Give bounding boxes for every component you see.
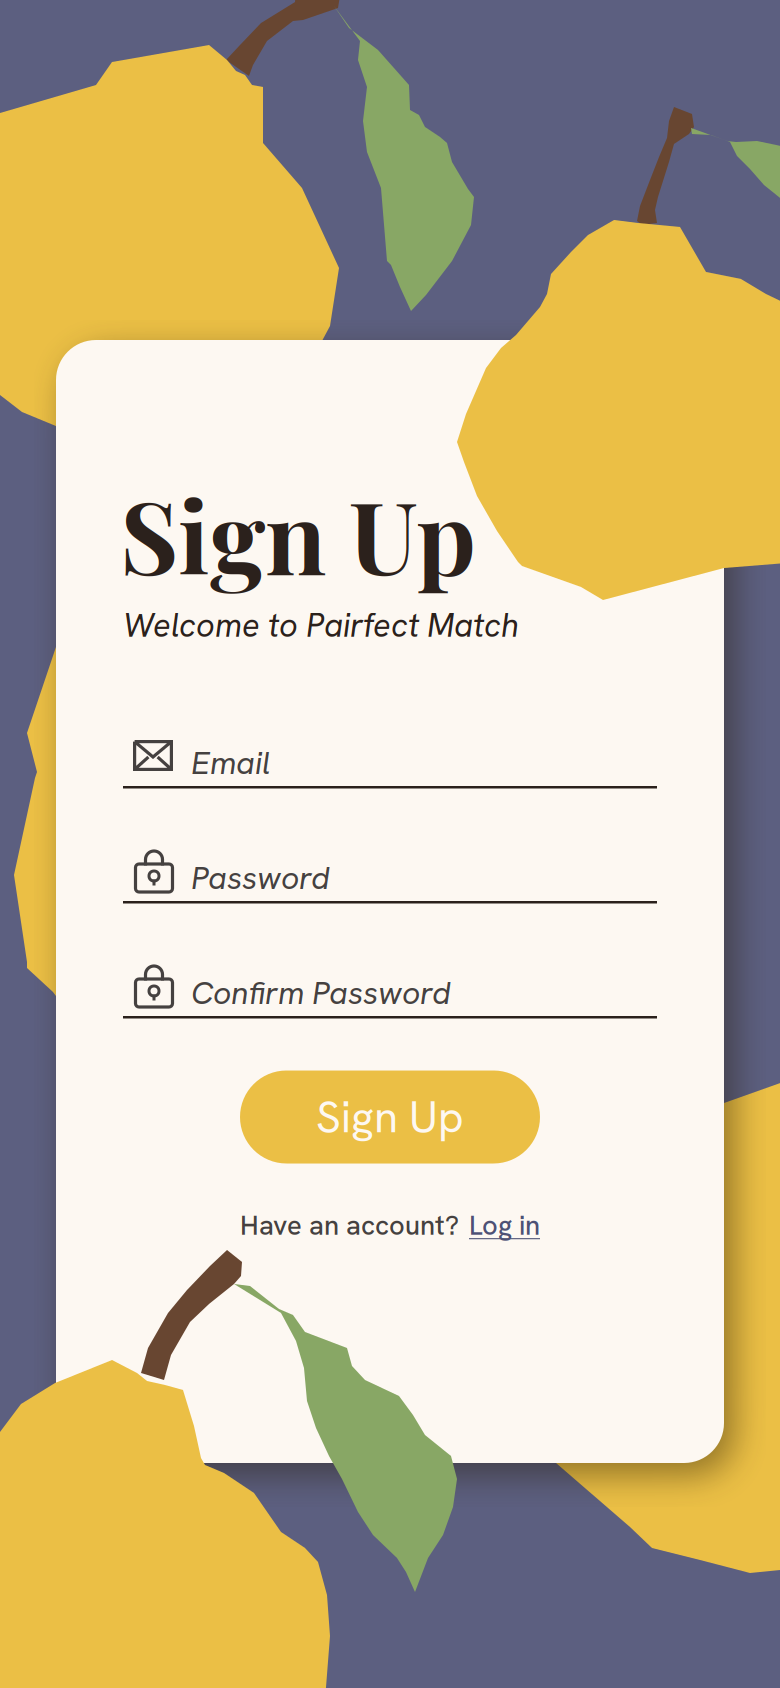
- staticText: Log in: [469, 1207, 540, 1243]
- staticText: Welcome to Pairfect Match: [123, 604, 519, 647]
- staticText: Sign Up: [316, 1088, 464, 1146]
- staticText: Have an account?: [240, 1207, 459, 1243]
- staticText: Password: [191, 857, 330, 899]
- staticText: Email: [191, 742, 270, 784]
- staticText: Confirm Password: [191, 972, 451, 1014]
- button[interactable]: Sign Up: [240, 1070, 540, 1163]
- staticText: Sign Up: [120, 467, 476, 600]
- button[interactable]: Log in: [469, 1207, 540, 1243]
